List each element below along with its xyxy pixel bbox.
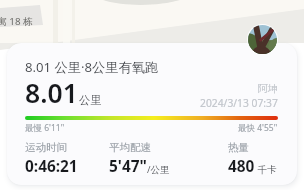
staticText: 平均配速 [109, 141, 151, 154]
staticText: /公里 [147, 163, 170, 176]
staticText: 8.01 公里·8公里有氧跑 [25, 58, 158, 76]
staticText: 8.01 [25, 75, 78, 111]
staticText: 0:46:21 [25, 156, 78, 177]
button[interactable]: Profile photo [247, 24, 278, 55]
staticText: 480 [228, 156, 255, 177]
button[interactable]: 8.01 公里·8公里有氧跑 [7, 43, 297, 185]
staticText: 阿坤 [258, 82, 278, 95]
button[interactable]: 热量 [228, 141, 277, 177]
staticText: 热量 [228, 141, 249, 154]
staticText: 2024/3/13 07:37 [200, 96, 278, 110]
staticText: 公里 [79, 93, 102, 107]
staticText: 寓 18 栋 [0, 15, 33, 28]
staticText: 最快 4'55" [238, 122, 278, 134]
staticText: 运动时间 [25, 141, 67, 154]
staticText: 千卡 [255, 163, 277, 176]
button[interactable]: 平均配速 [109, 141, 170, 177]
staticText: 最慢 6'11" [25, 122, 65, 134]
staticText: 5'47" [109, 156, 147, 177]
button[interactable]: 运动时间 [25, 141, 78, 177]
